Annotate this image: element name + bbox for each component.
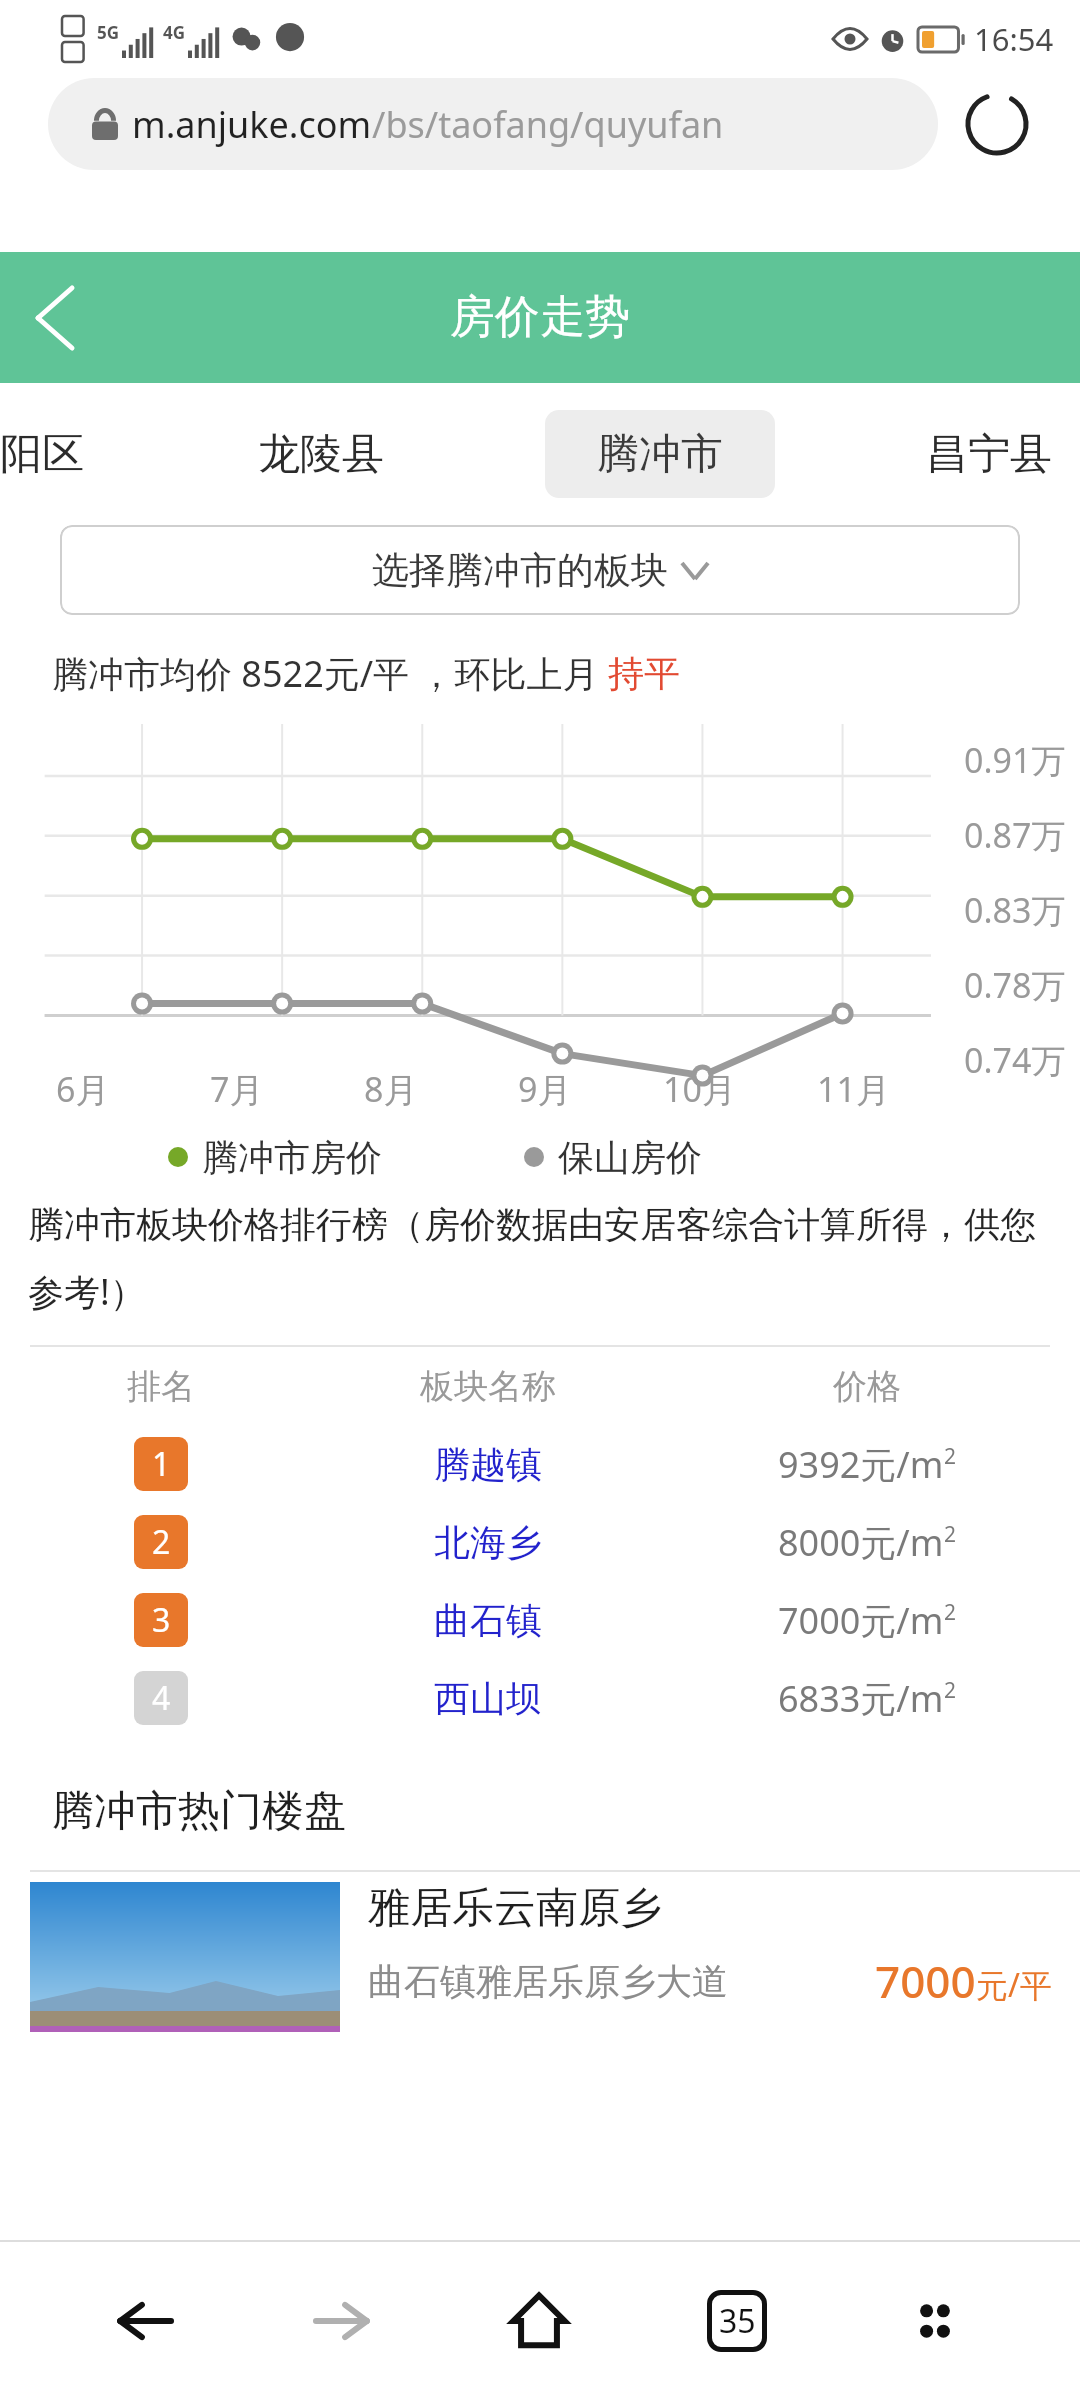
staticText: 3: [152, 1598, 171, 1642]
button[interactable]: 昌宁县: [926, 428, 1052, 481]
button[interactable]: 腾冲市: [545, 410, 775, 498]
staticText: 2: [944, 1598, 957, 1627]
button[interactable]: 2: [0, 1503, 1080, 1581]
staticText: 曲石镇雅居乐原乡大道: [368, 1959, 728, 2004]
staticText: 8000元/m: [778, 1518, 944, 1567]
staticText: 持平: [608, 651, 680, 696]
staticText: 腾冲市房价: [202, 1135, 382, 1180]
staticText: 曲石镇: [434, 1598, 542, 1643]
staticText: 腾冲市热门楼盘: [52, 1785, 346, 1838]
staticText: 7000: [875, 1951, 976, 2011]
button[interactable]: Forward: [243, 2242, 440, 2400]
staticText: 腾越镇: [434, 1442, 542, 1487]
button[interactable]: Home: [440, 2242, 638, 2400]
button[interactable]: Back: [0, 263, 110, 373]
staticText: 西山坝: [434, 1676, 542, 1721]
staticText: 35: [719, 2299, 756, 2343]
staticText: 0.74万: [964, 1037, 1066, 1083]
staticText: /bs/taofang/quyufan: [372, 100, 724, 149]
staticText: 1: [152, 1442, 171, 1486]
staticText: 6833元/m: [778, 1674, 944, 1723]
button[interactable]: 雅居乐云南原乡: [0, 1872, 1080, 2037]
button[interactable]: m.anjuke.com: [48, 78, 938, 170]
staticText: 0.83万: [964, 887, 1066, 933]
staticText: 北海乡: [434, 1520, 542, 1565]
staticText: 排名: [127, 1365, 195, 1408]
staticText: 4G: [163, 21, 186, 44]
staticText: 6月: [56, 1066, 110, 1112]
button[interactable]: 龙陵县: [258, 428, 384, 481]
staticText: 房价走势: [450, 289, 630, 346]
staticText: 5G: [97, 21, 120, 44]
staticText: 0.87万: [964, 812, 1066, 858]
button[interactable]: Back: [46, 2242, 243, 2400]
staticText: m.anjuke.com: [132, 100, 372, 149]
staticText: 2: [944, 1676, 957, 1705]
staticText: 16:54: [974, 18, 1054, 60]
button[interactable]: 1: [0, 1425, 1080, 1503]
button[interactable]: 4: [0, 1659, 1080, 1737]
staticText: 价格: [833, 1365, 901, 1408]
button[interactable]: Reload: [962, 89, 1032, 159]
staticText: 保山房价: [558, 1135, 702, 1180]
staticText: 腾冲市均价 8522元/平 ，环比上月: [52, 649, 608, 698]
button[interactable]: More: [836, 2242, 1034, 2400]
staticText: 7月: [210, 1066, 264, 1112]
staticText: 4: [152, 1676, 171, 1720]
staticText: 2: [944, 1520, 957, 1549]
staticText: 2: [152, 1520, 171, 1564]
staticText: 7000元/m: [778, 1596, 944, 1645]
staticText: 9392元/m: [778, 1440, 944, 1489]
staticText: 10月: [663, 1066, 736, 1112]
staticText: 板块名称: [420, 1365, 556, 1408]
staticText: 元/平: [976, 1963, 1052, 2007]
staticText: 腾冲市: [597, 428, 723, 481]
staticText: 雅居乐云南原乡: [368, 1882, 662, 1935]
staticText: 腾冲市板块价格排行榜（房价数据由安居客综合计算所得，供您参考!）: [28, 1202, 1070, 1315]
staticText: 选择腾冲市的板块: [372, 547, 668, 594]
staticText: 2: [944, 1442, 957, 1471]
staticText: 9月: [518, 1066, 572, 1112]
button[interactable]: 选择腾冲市的板块: [60, 525, 1020, 615]
button[interactable]: Tabs: [638, 2242, 836, 2400]
staticText: 0.78万: [964, 962, 1066, 1008]
staticText: 11月: [817, 1066, 890, 1112]
staticText: 0.91万: [964, 737, 1066, 783]
staticText: 8月: [364, 1066, 418, 1112]
button[interactable]: 3: [0, 1581, 1080, 1659]
button[interactable]: 阳区: [0, 428, 84, 481]
